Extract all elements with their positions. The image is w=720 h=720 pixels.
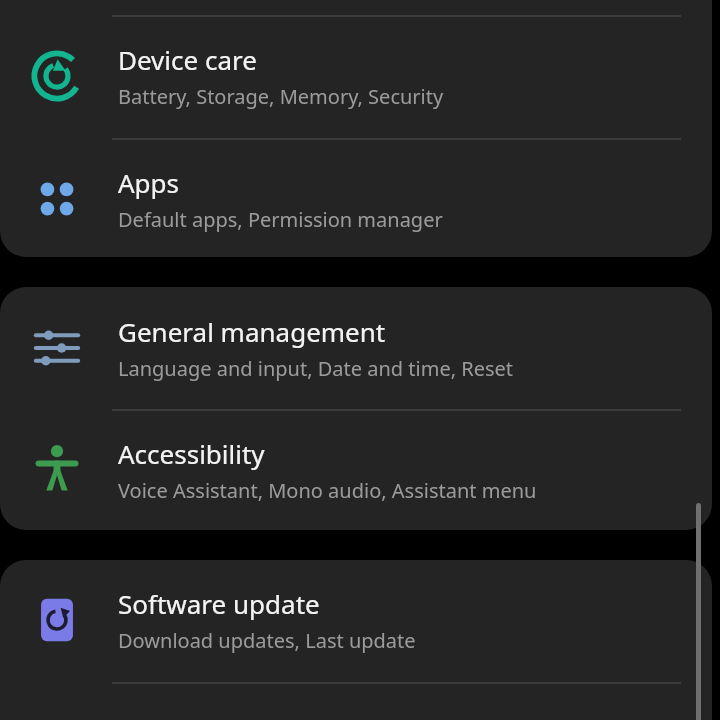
button[interactable]: Apps <box>0 155 712 261</box>
staticText: General management <box>118 314 386 349</box>
other: Device care <box>28 47 86 105</box>
staticText: Device care <box>118 42 257 77</box>
button[interactable]: General management <box>0 304 712 410</box>
staticText: Apps <box>118 165 180 200</box>
other: Software update <box>28 591 86 649</box>
staticText: Voice Assistant, Mono audio, Assistant m… <box>118 477 537 504</box>
staticText: Accessibility <box>118 436 265 471</box>
staticText: Software update <box>118 586 320 621</box>
other: Apps <box>28 170 86 228</box>
other: General management <box>28 319 86 377</box>
staticText: Download updates, Last update <box>118 627 416 654</box>
button[interactable]: Device care <box>0 32 712 138</box>
button[interactable]: Accessibility <box>0 426 712 532</box>
staticText: Battery, Storage, Memory, Security <box>118 83 444 110</box>
staticText: Language and input, Date and time, Reset <box>118 355 514 382</box>
other: Accessibility <box>28 441 86 499</box>
button[interactable]: Tips and help <box>0 699 712 720</box>
staticText: Default apps, Permission manager <box>118 206 443 233</box>
button[interactable]: Software update <box>0 576 712 682</box>
